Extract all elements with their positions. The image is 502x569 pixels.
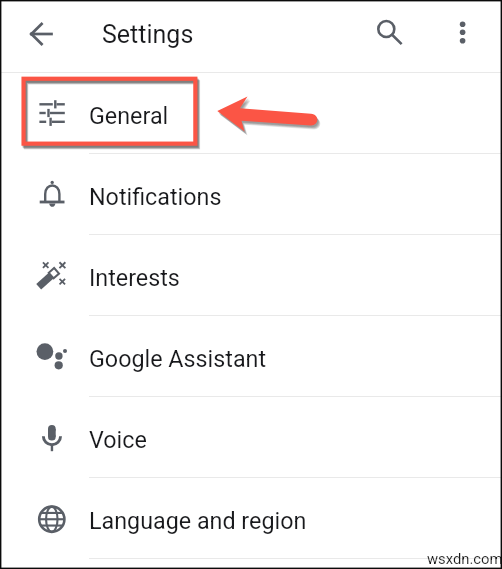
staticText: wsxdn.com [427,550,502,567]
button[interactable]: Google Assistant [0,316,502,397]
staticText: Google Assistant [89,345,267,372]
button[interactable]: Interests [0,235,502,316]
button[interactable]: More options [445,15,480,50]
button[interactable]: Back [21,14,61,54]
staticText: Interests [89,264,180,291]
staticText: Notifications [89,183,222,210]
staticText: Language and region [89,507,307,534]
staticText: Voice [89,426,147,453]
button[interactable]: Search [372,15,407,50]
button[interactable]: Language and region [0,478,502,559]
button[interactable]: Voice [0,397,502,478]
staticText: Settings [102,20,194,49]
staticText: General [89,102,169,129]
button[interactable]: General [0,73,502,154]
button[interactable]: Notifications [0,154,502,235]
